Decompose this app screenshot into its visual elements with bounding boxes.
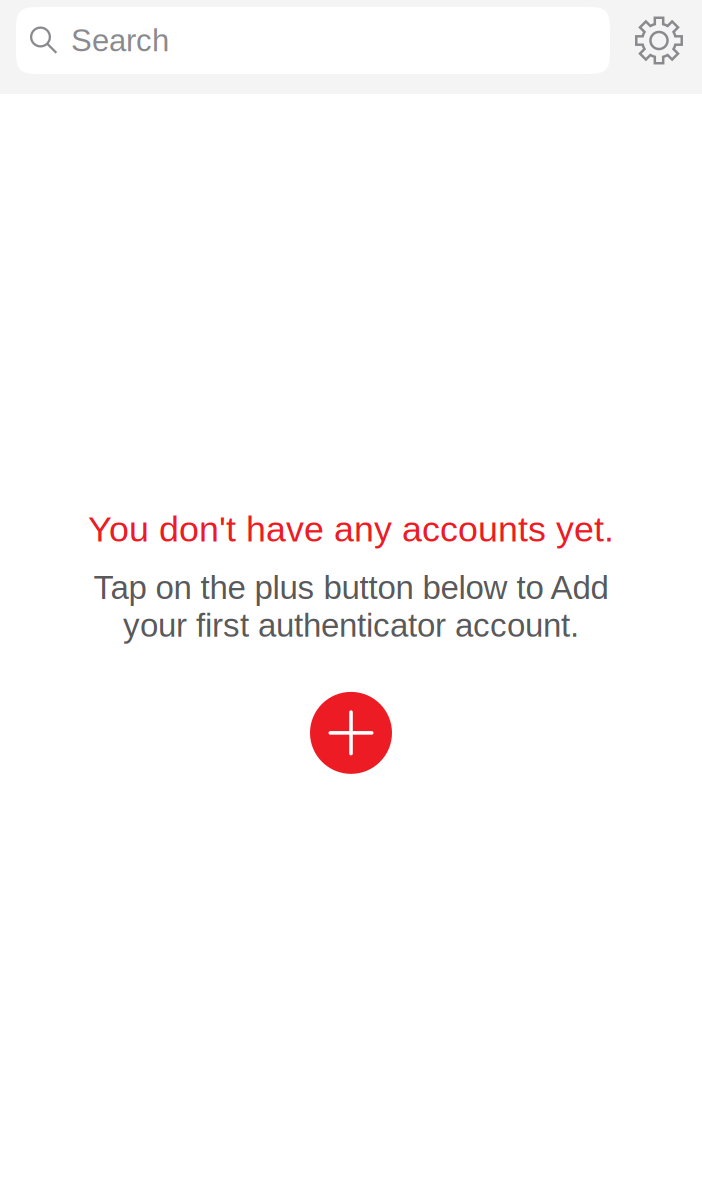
button[interactable]: Add account: [310, 692, 392, 774]
staticText: your first authenticator account.: [123, 607, 579, 644]
staticText: Search: [71, 23, 169, 58]
button[interactable]: Settings: [625, 7, 693, 74]
staticText: Tap on the plus button below to Add: [93, 569, 608, 606]
button[interactable]: Search: [16, 7, 610, 74]
staticText: You don't have any accounts yet.: [88, 509, 614, 549]
